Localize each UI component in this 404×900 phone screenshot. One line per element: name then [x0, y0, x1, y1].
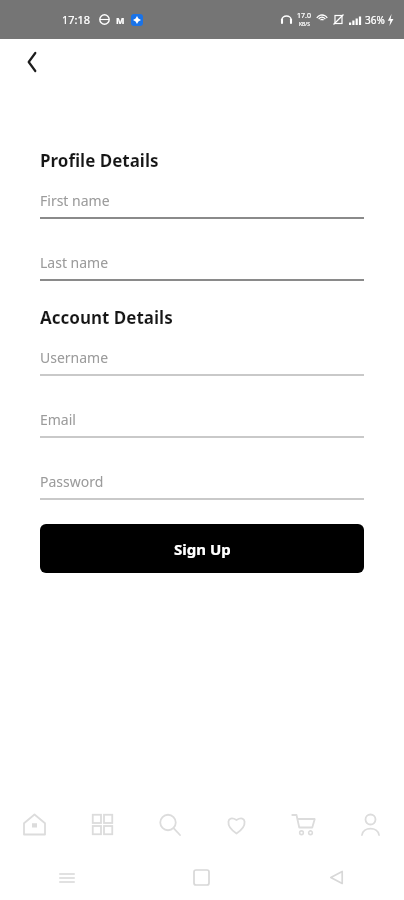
- staticText: Sign Up: [174, 539, 231, 559]
- button[interactable]: Sign Up: [40, 524, 364, 573]
- staticText: 36%: [365, 13, 385, 27]
- button[interactable]: Password: [40, 472, 364, 500]
- button[interactable]: Back: [269, 855, 404, 900]
- staticText: M: [116, 14, 125, 26]
- staticText: Username: [40, 348, 109, 367]
- button[interactable]: Back: [12, 42, 52, 82]
- button[interactable]: Wishlist: [203, 793, 270, 855]
- button[interactable]: Recents: [0, 855, 134, 900]
- button[interactable]: Username: [40, 348, 364, 376]
- button[interactable]: Last name: [40, 253, 364, 281]
- button[interactable]: First name: [40, 191, 364, 219]
- button[interactable]: Profile: [337, 793, 404, 855]
- staticText: Account Details: [40, 306, 173, 329]
- button[interactable]: Email: [40, 410, 364, 438]
- staticText: Email: [40, 410, 76, 429]
- staticText: Password: [40, 472, 104, 491]
- button[interactable]: Home: [134, 855, 269, 900]
- button[interactable]: Search: [136, 793, 203, 855]
- button[interactable]: Categories: [68, 793, 136, 855]
- button[interactable]: Home: [0, 793, 68, 855]
- staticText: 17:18: [62, 12, 91, 27]
- staticText: First name: [40, 191, 110, 210]
- button[interactable]: Cart: [270, 793, 337, 855]
- staticText: KB/S: [299, 21, 310, 28]
- staticText: Last name: [40, 253, 109, 272]
- staticText: Profile Details: [40, 149, 159, 172]
- staticText: 17.0: [297, 11, 311, 21]
